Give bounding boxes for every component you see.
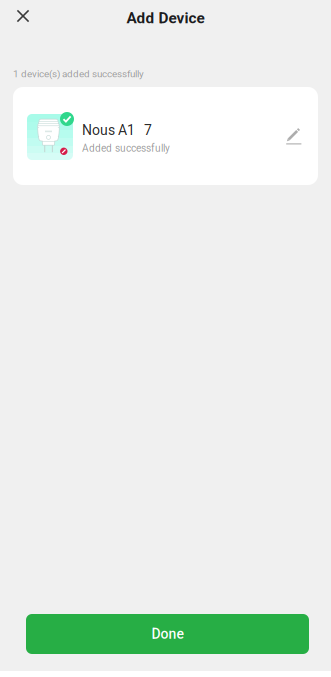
- staticText: Nous A1 7: [82, 122, 152, 138]
- button[interactable]: Done: [26, 614, 309, 654]
- button[interactable]: Close: [6, 0, 40, 33]
- staticText: 1 device(s) added successfully: [13, 68, 144, 80]
- button[interactable]: Rename device: [277, 119, 311, 153]
- staticText: Added successfully: [82, 142, 170, 154]
- staticText: Add Device: [126, 9, 204, 27]
- staticText: Done: [151, 626, 183, 642]
